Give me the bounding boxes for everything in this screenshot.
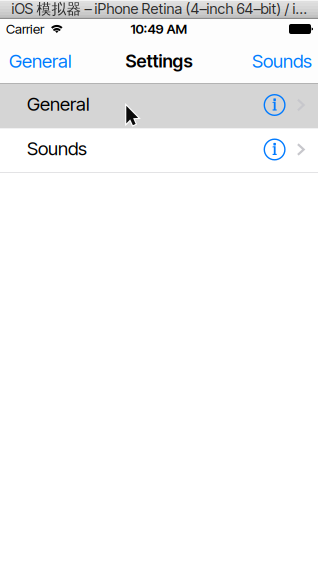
staticText: iOS 模拟器 – iPhone Retina (4–inch 64–bit) … [11,0,306,18]
staticText: Settings [125,50,192,72]
button[interactable]: Sounds [244,39,318,83]
staticText: 10:49 AM [130,21,187,37]
staticText: General [27,93,90,115]
button[interactable]: General [0,39,80,83]
staticText: General [9,50,72,72]
staticText: Carrier [6,21,44,37]
staticText: Sounds [27,137,87,160]
button[interactable]: General [0,84,318,128]
button[interactable]: Sounds [0,128,318,172]
staticText: Sounds [252,50,312,72]
